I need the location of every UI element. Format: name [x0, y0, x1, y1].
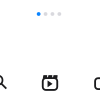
button[interactable]: Profile [77, 71, 100, 97]
button[interactable]: Films [25, 70, 74, 96]
button[interactable]: Search [0, 69, 24, 95]
